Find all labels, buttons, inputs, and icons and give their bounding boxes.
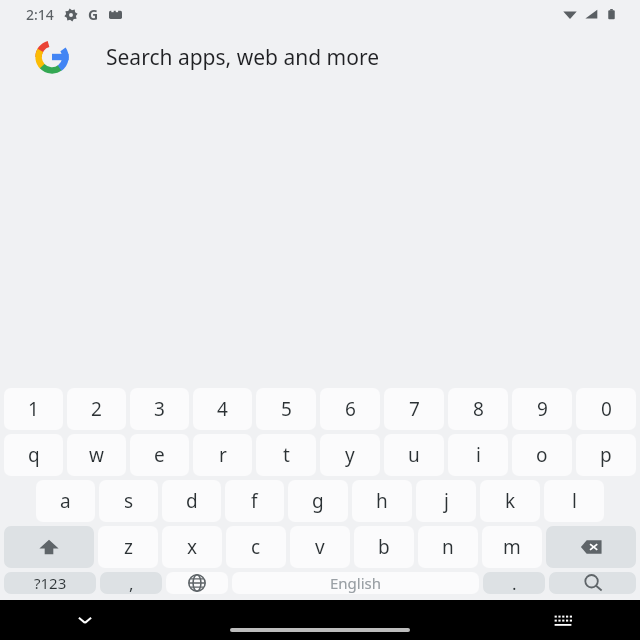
staticText: w (89, 442, 104, 468)
staticText: z (124, 534, 133, 560)
button[interactable]: j (416, 480, 476, 522)
staticText: s (124, 488, 134, 514)
staticText: m (503, 534, 521, 560)
button[interactable]: v (290, 526, 350, 568)
button[interactable]: 9 (512, 388, 572, 430)
button[interactable]: z (98, 526, 158, 568)
button[interactable]: p (576, 434, 636, 476)
button[interactable]: Switch keyboard (548, 605, 578, 635)
staticText: t (283, 442, 290, 468)
staticText: 4 (217, 396, 228, 422)
staticText: k (505, 488, 516, 514)
staticText: English (330, 573, 382, 593)
button[interactable]: 3 (130, 388, 189, 430)
button[interactable]: u (384, 434, 444, 476)
staticText: 5 (281, 396, 292, 422)
button[interactable]: x (162, 526, 222, 568)
button[interactable]: Hide keyboard (70, 605, 100, 635)
staticText: p (600, 442, 612, 468)
staticText: 1 (28, 396, 39, 422)
staticText: a (60, 488, 71, 514)
staticText: 9 (537, 396, 548, 422)
staticText: o (536, 442, 548, 468)
button[interactable]: a (36, 480, 95, 522)
button[interactable]: i (448, 434, 508, 476)
button[interactable]: w (67, 434, 126, 476)
button[interactable]: r (193, 434, 252, 476)
staticText: ?123 (34, 573, 67, 593)
staticText: y (345, 442, 355, 468)
staticText: Search apps, web and more (106, 43, 379, 72)
staticText: b (378, 534, 390, 560)
button[interactable]: g (288, 480, 348, 522)
button[interactable]: f (225, 480, 284, 522)
button[interactable]: Search (549, 572, 636, 594)
staticText: v (315, 534, 325, 560)
button[interactable]: 5 (256, 388, 316, 430)
button[interactable]: q (4, 434, 63, 476)
button[interactable]: 0 (576, 388, 636, 430)
button[interactable]: o (512, 434, 572, 476)
button[interactable]: e (130, 434, 189, 476)
staticText: 0 (601, 396, 612, 422)
button[interactable]: Shift (4, 526, 94, 568)
staticText: l (572, 488, 577, 514)
staticText: f (251, 488, 258, 514)
button[interactable]: 4 (193, 388, 252, 430)
button[interactable]: , (100, 572, 162, 594)
button[interactable]: l (544, 480, 604, 522)
button[interactable]: s (99, 480, 158, 522)
button[interactable]: m (482, 526, 542, 568)
staticText: 6 (345, 396, 356, 422)
button[interactable]: ?123 (4, 572, 96, 594)
staticText: r (219, 442, 227, 468)
button[interactable]: Search apps, web and more (0, 28, 640, 86)
staticText: u (408, 442, 420, 468)
staticText: 3 (154, 396, 165, 422)
button[interactable]: 6 (320, 388, 380, 430)
staticText: G (88, 5, 99, 24)
staticText: c (251, 534, 261, 560)
button[interactable]: k (480, 480, 540, 522)
staticText: 2:14 (26, 5, 54, 24)
staticText: h (376, 488, 388, 514)
button[interactable]: 2 (67, 388, 126, 430)
button[interactable]: Backspace (546, 526, 636, 568)
button[interactable]: y (320, 434, 380, 476)
staticText: 8 (473, 396, 484, 422)
button[interactable]: d (162, 480, 221, 522)
button[interactable]: 1 (4, 388, 63, 430)
staticText: g (312, 488, 324, 514)
button[interactable]: 8 (448, 388, 508, 430)
button[interactable]: c (226, 526, 286, 568)
button[interactable]: . (483, 572, 545, 594)
staticText: q (28, 442, 40, 468)
staticText: i (476, 442, 481, 468)
staticText: n (442, 534, 454, 560)
staticText: . (512, 572, 517, 594)
staticText: , (129, 572, 134, 594)
button[interactable]: h (352, 480, 412, 522)
staticText: 2 (91, 396, 102, 422)
button[interactable]: 7 (384, 388, 444, 430)
button[interactable]: t (256, 434, 316, 476)
staticText: x (187, 534, 198, 560)
button[interactable]: English (232, 572, 479, 594)
button[interactable]: Change language (166, 572, 228, 594)
staticText: d (186, 488, 198, 514)
staticText: 7 (409, 396, 420, 422)
staticText: e (154, 442, 165, 468)
staticText: j (444, 488, 449, 514)
button[interactable]: n (418, 526, 478, 568)
button[interactable]: b (354, 526, 414, 568)
